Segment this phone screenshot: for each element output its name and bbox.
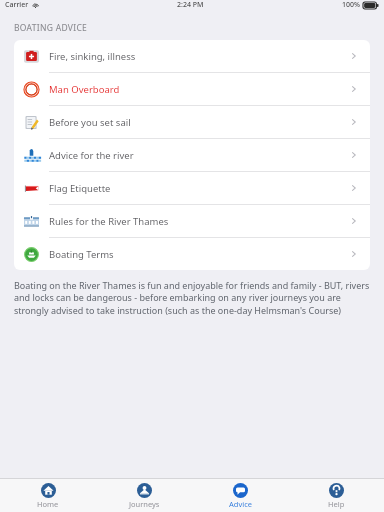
staticText: Home: [37, 499, 59, 509]
staticText: Advice: [229, 499, 252, 509]
staticText: Boating Terms: [49, 248, 114, 261]
staticText: 2:24 PM: [177, 0, 204, 10]
staticText: Carrier: [5, 0, 29, 10]
button[interactable]: Flag Etiquette: [14, 172, 370, 204]
staticText: Before you set sail: [49, 116, 131, 129]
button[interactable]: Boating Terms: [14, 238, 370, 270]
button[interactable]: Fire, sinking, illness: [14, 40, 370, 72]
button[interactable]: Home: [0, 483, 96, 509]
button[interactable]: Advice: [192, 483, 288, 509]
staticText: 100%: [342, 0, 360, 10]
staticText: BOATING ADVICE: [14, 22, 88, 34]
staticText: Help: [328, 499, 345, 509]
button[interactable]: Before you set sail: [14, 106, 370, 138]
button[interactable]: Rules for the River Thames: [14, 205, 370, 237]
staticText: Boating on the River Thames is fun and e…: [14, 279, 370, 317]
staticText: Man Overboard: [49, 83, 120, 96]
button[interactable]: Man Overboard: [14, 73, 370, 105]
staticText: Journeys: [129, 499, 160, 509]
staticText: Rules for the River Thames: [49, 215, 169, 228]
staticText: Advice for the river: [49, 149, 134, 162]
staticText: Flag Etiquette: [49, 182, 111, 195]
button[interactable]: Help: [288, 483, 384, 509]
button[interactable]: Advice for the river: [14, 139, 370, 171]
button[interactable]: Journeys: [96, 483, 192, 509]
staticText: Fire, sinking, illness: [49, 50, 136, 63]
